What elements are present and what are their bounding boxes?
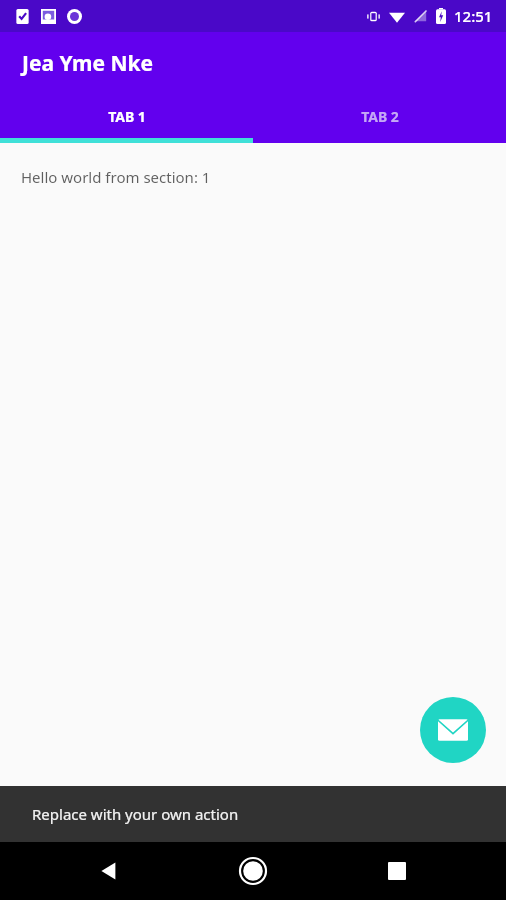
button[interactable]: Recent apps <box>374 848 420 894</box>
staticText: Hello world from section: 1 <box>21 167 211 187</box>
button[interactable]: Home <box>230 848 276 894</box>
button[interactable]: Replace with your own action <box>0 786 506 842</box>
button[interactable]: TAB 2 <box>253 94 506 138</box>
button[interactable]: TAB 1 <box>0 94 253 138</box>
staticText: 12:51 <box>454 6 493 26</box>
staticText: Jea Yme Nke <box>22 49 154 78</box>
button[interactable]: Back <box>86 848 132 894</box>
staticText: TAB 1 <box>108 107 146 126</box>
button[interactable]: Compose message <box>420 697 486 763</box>
staticText: Replace with your own action <box>32 804 239 824</box>
staticText: TAB 2 <box>361 107 399 126</box>
